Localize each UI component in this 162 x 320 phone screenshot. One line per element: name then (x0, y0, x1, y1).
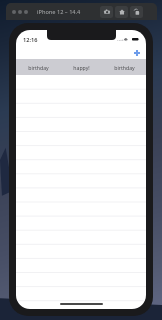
staticText: happy! (73, 64, 90, 71)
button[interactable]: Window control (24, 10, 28, 14)
button[interactable]: Screenshot (100, 6, 113, 18)
staticText: iPhone 12 – 14.4 (37, 8, 81, 16)
staticText: 12:16 (23, 36, 38, 44)
button[interactable]: birthday (16, 59, 60, 75)
button[interactable]: Window control (12, 10, 16, 14)
staticText: birthday (28, 64, 49, 71)
button[interactable]: happy! (60, 59, 103, 75)
button[interactable]: birthday (103, 59, 146, 75)
button[interactable]: Home (115, 6, 128, 18)
button[interactable]: Add (131, 47, 142, 58)
button[interactable]: Rotate (130, 6, 143, 18)
button[interactable]: Window control (18, 10, 22, 14)
staticText: birthday (114, 64, 135, 71)
